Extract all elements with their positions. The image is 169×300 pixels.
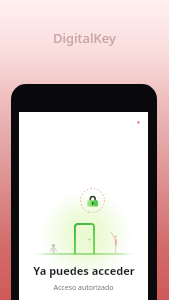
staticText: Acceso autorizado (53, 283, 114, 293)
staticText: Ya puedes acceder (33, 263, 135, 278)
button[interactable]: DigitalKey (53, 29, 116, 47)
